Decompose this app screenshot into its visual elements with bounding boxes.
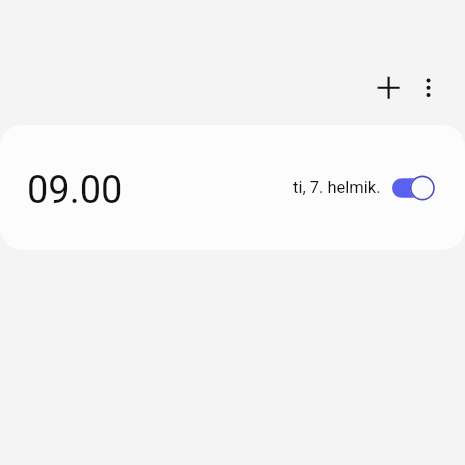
- staticText: ti, 7. helmik.: [293, 178, 381, 197]
- button[interactable]: More options: [408, 68, 448, 108]
- button[interactable]: Add alarm: [368, 68, 408, 108]
- button[interactable]: 09.00: [0, 125, 465, 250]
- staticText: 09.00: [27, 168, 123, 213]
- button[interactable]: Alarm on: [392, 173, 434, 203]
